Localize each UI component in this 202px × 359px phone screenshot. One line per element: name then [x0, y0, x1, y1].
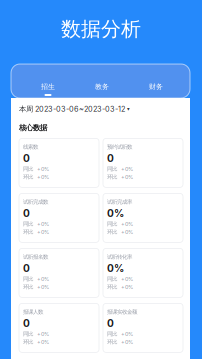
- button[interactable]: 预约试听数: [103, 138, 183, 187]
- staticText: 0: [107, 317, 114, 330]
- staticText: 预约试听数: [107, 143, 132, 150]
- staticText: 0: [107, 152, 114, 165]
- staticText: 环比 +0%: [23, 228, 49, 235]
- staticText: 本周 2023-03-06~2023-03-12: [19, 104, 125, 114]
- staticText: 报课实收金额: [107, 308, 137, 315]
- staticText: 线索数: [23, 143, 38, 150]
- staticText: 同比 +0%: [107, 166, 133, 172]
- button[interactable]: 本周 2023-03-06~2023-03-12: [19, 104, 182, 114]
- staticText: 环比 +0%: [23, 283, 49, 290]
- staticText: 同比 +0%: [107, 221, 133, 227]
- staticText: 0: [23, 152, 30, 165]
- staticText: 同比 +0%: [107, 276, 133, 282]
- staticText: 环比 +0%: [107, 228, 133, 235]
- staticText: 试听转化率: [107, 253, 132, 260]
- button[interactable]: 试听完成率: [103, 193, 183, 242]
- button[interactable]: 报课人数: [19, 303, 99, 352]
- staticText: 0%: [107, 207, 124, 220]
- staticText: 同比 +0%: [23, 331, 49, 337]
- staticText: 环比 +0%: [107, 173, 133, 180]
- staticText: 同比 +0%: [107, 331, 133, 337]
- button[interactable]: 教务: [75, 64, 129, 98]
- button[interactable]: 报课实收金额: [103, 303, 183, 352]
- button[interactable]: 招生: [21, 64, 75, 98]
- staticText: 数据分析: [61, 16, 141, 42]
- staticText: 财务: [149, 82, 163, 91]
- staticText: 环比 +0%: [23, 173, 49, 180]
- staticText: 环比 +0%: [23, 338, 49, 345]
- staticText: 0: [23, 207, 30, 220]
- button[interactable]: 试听完成数: [19, 193, 99, 242]
- staticText: 环比 +0%: [107, 283, 133, 290]
- staticText: 同比 +0%: [23, 221, 49, 227]
- staticText: 试听完成率: [107, 198, 132, 205]
- staticText: 教务: [95, 82, 109, 91]
- staticText: ▾: [127, 106, 130, 112]
- staticText: 试听完成数: [23, 198, 48, 205]
- staticText: 0: [23, 262, 30, 275]
- staticText: 0: [23, 317, 30, 330]
- staticText: 0%: [107, 262, 124, 275]
- button[interactable]: 线索数: [19, 138, 99, 187]
- staticText: 报课人数: [23, 308, 43, 315]
- staticText: 试听报名数: [23, 253, 48, 260]
- staticText: 同比 +0%: [23, 276, 49, 282]
- staticText: 环比 +0%: [107, 338, 133, 345]
- button[interactable]: 试听报名数: [19, 248, 99, 297]
- button[interactable]: 试听转化率: [103, 248, 183, 297]
- staticText: 核心数据: [19, 123, 47, 132]
- staticText: 同比 +0%: [23, 166, 49, 172]
- staticText: 招生: [41, 82, 55, 91]
- button[interactable]: 财务: [129, 64, 183, 98]
